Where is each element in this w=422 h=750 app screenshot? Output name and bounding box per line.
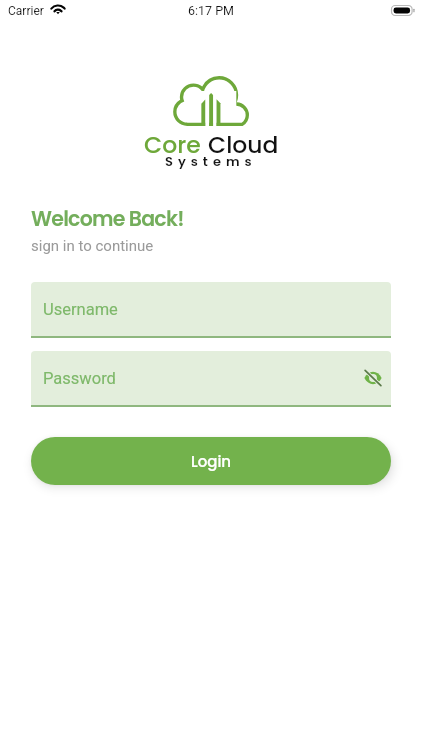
button[interactable]: Login [31,437,391,485]
staticText: Username [43,300,118,319]
staticText: 6:17 PM [188,3,235,18]
staticText: Core [144,128,201,161]
staticText: sign in to continue [31,237,154,255]
staticText: Welcome Back! [31,204,184,233]
button[interactable]: Toggle password visibility [361,366,385,390]
staticText: Cloud [208,128,279,161]
button[interactable]: Password [31,351,391,407]
button[interactable]: Username [31,282,391,338]
staticText: Login [191,451,232,472]
staticText: Password [43,369,116,388]
staticText: Systems [165,152,257,170]
staticText: Carrier [8,4,44,18]
